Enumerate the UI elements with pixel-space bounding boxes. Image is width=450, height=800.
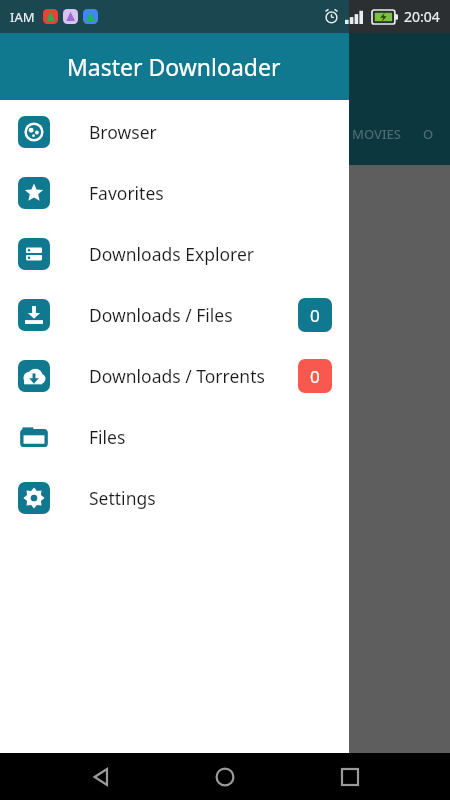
button[interactable]: Home [201, 753, 249, 800]
button[interactable]: Files [0, 406, 349, 467]
staticText: Settings [89, 486, 156, 510]
staticText: Master Downloader [67, 51, 281, 82]
staticText: Downloads / Files [89, 303, 233, 327]
staticText: 0 [310, 304, 320, 327]
staticText: MOVIES [352, 125, 401, 143]
staticText: 0 [310, 365, 320, 388]
staticText: Downloads Explorer [89, 242, 255, 266]
button[interactable]: Back [77, 753, 125, 800]
staticText: Browser [89, 120, 157, 144]
button[interactable]: Downloads Explorer [0, 223, 349, 284]
button[interactable]: Recents [326, 753, 374, 800]
button[interactable]: Downloads / Files [0, 284, 349, 345]
staticText: IAM [10, 8, 35, 26]
staticText: Favorites [89, 181, 164, 205]
staticText: Files [89, 425, 126, 449]
button[interactable]: Browser [0, 101, 349, 162]
staticText: Downloads / Torrents [89, 364, 265, 388]
staticText: 20:04 [404, 7, 440, 26]
button[interactable]: Settings [0, 467, 349, 528]
staticText: O [423, 125, 434, 143]
button[interactable]: Downloads / Torrents [0, 345, 349, 406]
button[interactable]: Favorites [0, 162, 349, 223]
